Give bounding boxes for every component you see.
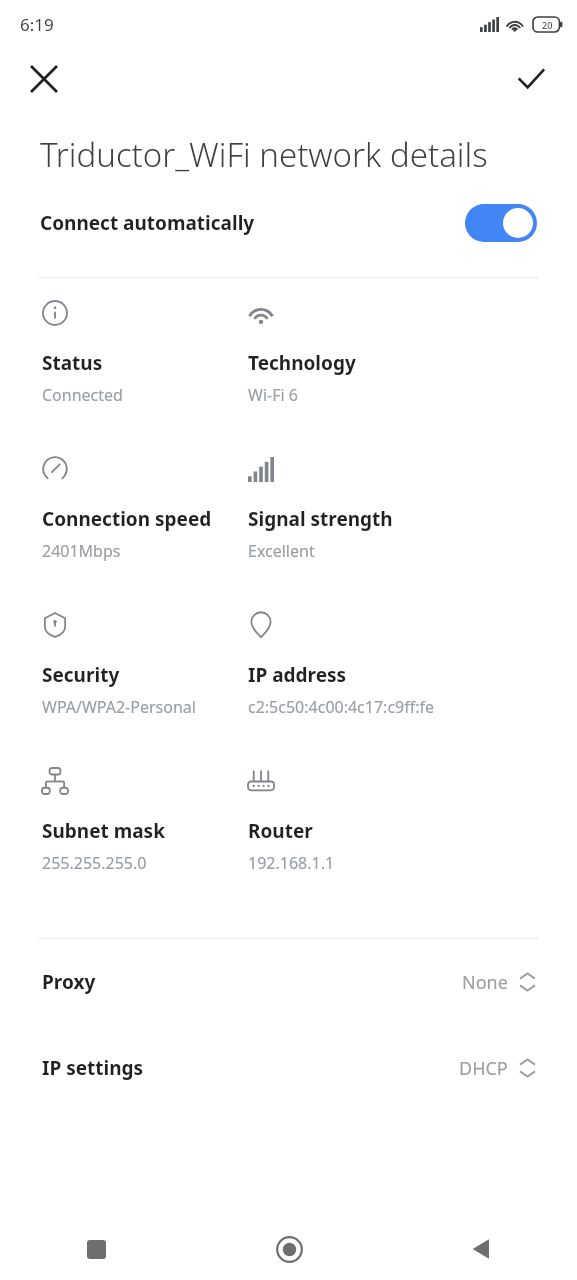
staticText: 20 [542,19,553,31]
staticText: 192.168.1.1 [248,852,335,874]
staticText: Connected [42,384,123,406]
staticText: Connect automatically [40,210,465,236]
button[interactable]: Proxy [0,939,577,1025]
button[interactable]: Home [193,1218,385,1280]
staticText: WPA/WPA2-Personal [42,696,196,718]
button[interactable]: IP address [248,612,577,768]
staticText: Wi-Fi 6 [248,384,298,406]
staticText: Status [42,350,103,376]
staticText: Technology [248,350,356,376]
button[interactable]: Subnet mask [42,768,248,924]
button[interactable]: Connection speed [42,456,248,612]
button[interactable]: Save [509,57,553,101]
button[interactable]: Status [42,300,248,456]
staticText: Signal strength [248,506,393,532]
button[interactable]: Connect automatically [0,195,577,251]
staticText: IP address [248,662,347,688]
button[interactable]: Router [248,768,577,924]
staticText: 2401Mbps [42,540,121,562]
button[interactable]: Back [385,1218,577,1280]
button[interactable]: Signal strength [248,456,577,612]
staticText: Router [248,818,313,844]
staticText: DHCP [459,1056,508,1081]
staticText: 255.255.255.0 [42,852,147,874]
staticText: IP settings [42,1055,459,1081]
button[interactable]: Security [42,612,248,768]
staticText: Triductor_WiFi network details [40,132,488,177]
staticText: Connection speed [42,506,212,532]
staticText: c2:5c50:4c00:4c17:c9ff:fe [248,696,435,718]
staticText: Excellent [248,540,315,562]
staticText: Proxy [42,969,462,995]
staticText: 6:19 [20,13,54,36]
button[interactable]: Recents [0,1218,193,1280]
staticText: Subnet mask [42,818,165,844]
staticText: Security [42,662,120,688]
button[interactable]: IP settings [0,1025,577,1111]
staticText: None [462,970,508,995]
button[interactable]: Technology [248,300,577,456]
button[interactable]: Close [22,57,66,101]
